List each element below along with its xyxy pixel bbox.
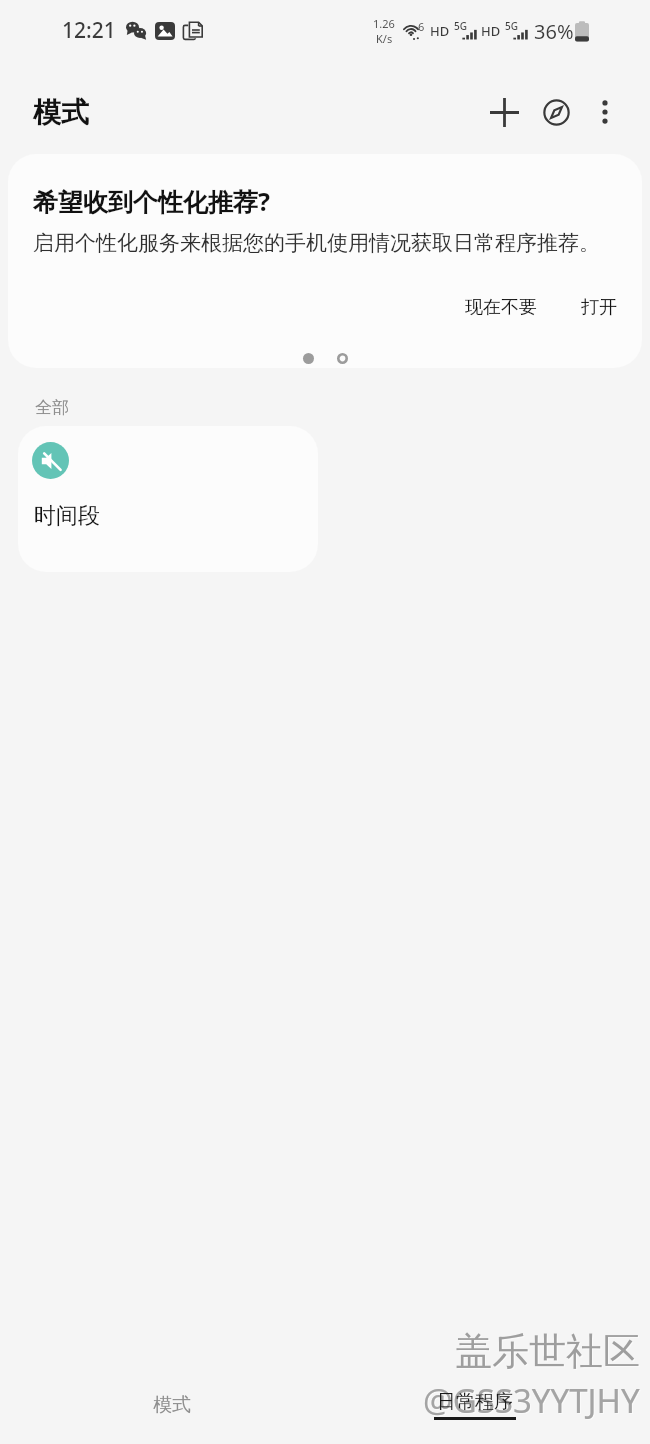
staticText: 日常程序 [437, 1390, 513, 1414]
staticText: 1.26 [373, 16, 395, 31]
staticText: 全部 [35, 397, 69, 418]
staticText: 打开 [581, 296, 617, 319]
staticText: 36% [534, 18, 574, 45]
button[interactable]: Discover [532, 84, 580, 140]
button[interactable]: 时间段 [18, 426, 318, 572]
staticText: 5G [454, 19, 467, 33]
button[interactable]: Add [476, 84, 532, 140]
staticText: 模式 [33, 95, 89, 130]
staticText: 现在不要 [465, 296, 537, 319]
staticText: 6 [418, 19, 425, 34]
staticText: 希望收到个性化推荐? [33, 184, 270, 218]
staticText: 盖乐世社区 [455, 1328, 640, 1375]
staticText: HD [430, 22, 450, 40]
staticText: 启用个性化服务来根据您的手机使用情况获取日常程序推荐。 [33, 230, 600, 256]
staticText: 时间段 [34, 502, 100, 530]
staticText: HD [481, 22, 501, 40]
button[interactable]: 模式 [0, 1352, 344, 1444]
staticText: 5G [505, 19, 518, 33]
staticText: @GSS3YYTJHY [423, 1378, 640, 1423]
staticText: @GSS3YYTJHY [424, 1379, 641, 1424]
staticText: K/s [376, 31, 393, 46]
button[interactable]: 日常程序 [344, 1352, 606, 1444]
button[interactable]: 打开 [571, 290, 627, 325]
staticText: 12:21 [62, 16, 116, 45]
staticText: 模式 [153, 1393, 191, 1417]
staticText: 盖乐世社区 [456, 1329, 641, 1376]
button[interactable]: More options [580, 84, 630, 140]
button[interactable]: 现在不要 [455, 290, 547, 325]
